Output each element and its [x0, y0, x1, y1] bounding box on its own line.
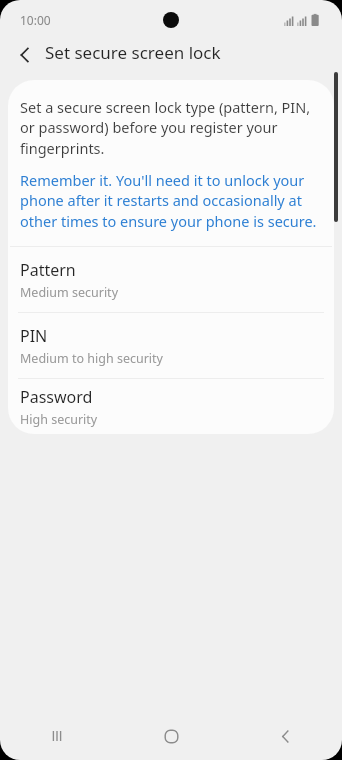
staticText: Medium security	[20, 284, 119, 301]
staticText: Set a secure screen lock type (pattern, …	[20, 97, 312, 159]
staticText: Set secure screen lock	[45, 41, 221, 64]
button[interactable]: Recent apps	[0, 712, 114, 760]
staticText: Pattern	[20, 259, 76, 281]
staticText: 10:00	[20, 12, 51, 28]
staticText: Password	[20, 386, 93, 408]
button[interactable]: Home	[114, 712, 228, 760]
staticText: High security	[20, 411, 98, 428]
button[interactable]: Back	[228, 712, 342, 760]
staticText: Medium to high security	[20, 350, 163, 367]
staticText: Remember it. You'll need it to unlock yo…	[20, 170, 320, 232]
button[interactable]: PIN	[8, 313, 334, 378]
button[interactable]: Back	[8, 38, 42, 72]
button[interactable]: Pattern	[8, 247, 334, 312]
staticText: PIN	[20, 325, 48, 347]
button[interactable]: Password	[8, 379, 334, 434]
